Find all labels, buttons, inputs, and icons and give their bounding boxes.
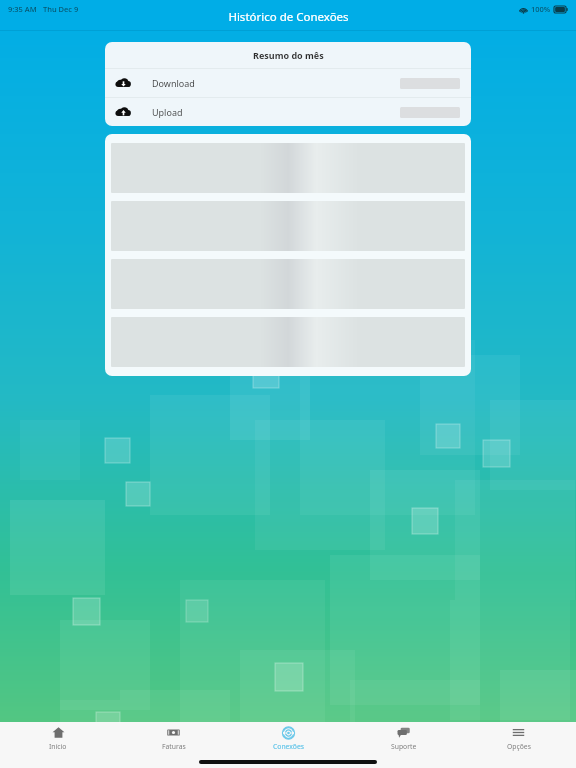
button[interactable]: Opções: [461, 726, 576, 751]
staticText: Suporte: [391, 742, 417, 751]
button[interactable]: Download: [105, 69, 471, 97]
button[interactable]: Suporte: [346, 726, 461, 751]
button[interactable]: [105, 313, 471, 371]
button[interactable]: [105, 255, 471, 313]
button[interactable]: Início: [0, 726, 116, 751]
button[interactable]: Conexões: [231, 726, 346, 751]
staticText: Início: [49, 742, 67, 751]
button[interactable]: Upload: [105, 98, 471, 126]
staticText: Resumo do mês: [253, 49, 324, 61]
staticText: Opções: [507, 742, 531, 751]
staticText: 9:35 AM: [8, 4, 37, 14]
button[interactable]: [105, 139, 471, 197]
staticText: Thu Dec 9: [43, 4, 79, 14]
staticText: Conexões: [273, 742, 304, 751]
staticText: 100%: [531, 4, 551, 14]
staticText: Faturas: [162, 742, 186, 751]
button[interactable]: [105, 197, 471, 255]
button[interactable]: Faturas: [116, 726, 231, 751]
staticText: Upload: [152, 106, 183, 118]
staticText: Histórico de Conexões: [228, 9, 349, 25]
staticText: Download: [152, 77, 195, 89]
